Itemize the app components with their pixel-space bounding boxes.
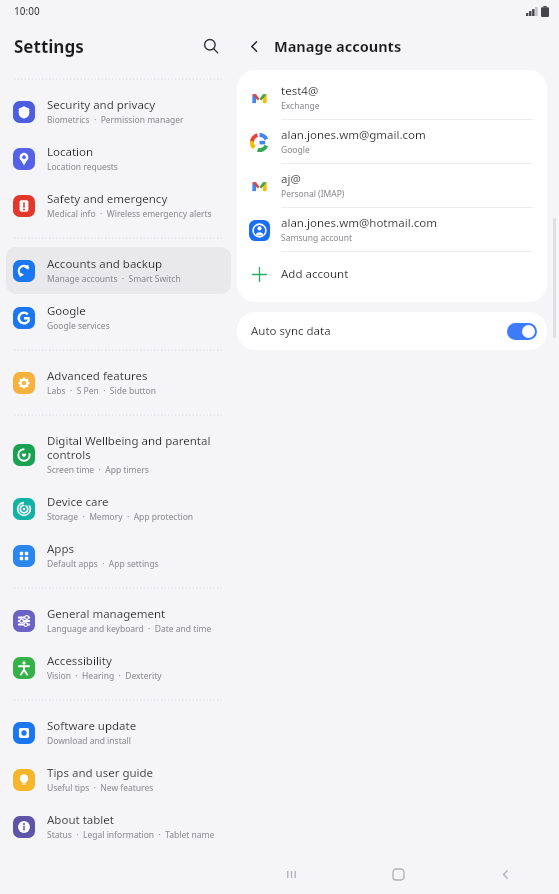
button[interactable]: Google [6, 294, 231, 341]
staticText: Software update [47, 718, 137, 734]
button[interactable]: Auto sync data toggle [507, 323, 537, 340]
staticText: Security and privacy [47, 97, 156, 113]
button[interactable]: test4@ [237, 76, 547, 119]
button[interactable]: Add account [237, 252, 547, 296]
staticText: Safety and emergency [47, 191, 168, 207]
staticText: Default apps · App settings [47, 558, 159, 570]
staticText: Device care [47, 494, 109, 510]
staticText: Download and install [47, 735, 131, 747]
button[interactable]: aj@ [237, 164, 547, 207]
button[interactable]: alan.jones.wm@gmail.com [237, 120, 547, 163]
staticText: Useful tips · New features [47, 782, 154, 794]
staticText: Vision · Hearing · Dexterity [47, 670, 162, 682]
staticText: About tablet [47, 812, 114, 828]
staticText: alan.jones.wm@hotmail.com [281, 215, 437, 231]
button[interactable]: Tips and user guide [6, 756, 231, 803]
button[interactable]: Accounts and backup [6, 247, 231, 294]
staticText: aj@ [281, 171, 301, 187]
staticText: Exchange [281, 100, 320, 112]
button[interactable]: Security and privacy [6, 88, 231, 135]
staticText: Accessibility [47, 653, 112, 669]
staticText: Storage · Memory · App protection [47, 511, 194, 523]
button[interactable]: Device care [6, 485, 231, 532]
staticText: Manage accounts · Smart Switch [47, 273, 181, 285]
staticText: Medical info · Wireless emergency alerts [47, 208, 212, 220]
staticText: Personal (IMAP) [281, 188, 345, 200]
staticText: Apps [47, 541, 75, 557]
button[interactable]: Back [452, 855, 559, 894]
button[interactable]: Back [237, 29, 271, 63]
staticText: Accounts and backup [47, 256, 163, 272]
button[interactable]: Search [193, 28, 229, 64]
staticText: Tips and user guide [47, 765, 154, 781]
staticText: test4@ [281, 83, 319, 99]
button[interactable]: alan.jones.wm@hotmail.com [237, 208, 547, 251]
staticText: alan.jones.wm@gmail.com [281, 127, 426, 143]
staticText: Location requests [47, 161, 118, 173]
staticText: Labs · S Pen · Side button [47, 385, 156, 397]
staticText: Biometrics · Permission manager [47, 114, 184, 126]
staticText: Google [47, 303, 86, 319]
button[interactable]: Auto sync data [237, 312, 547, 350]
button[interactable]: About tablet [6, 803, 231, 850]
staticText: Google [281, 144, 310, 156]
staticText: Location [47, 144, 94, 160]
staticText: Language and keyboard · Date and time [47, 623, 212, 635]
button[interactable]: Advanced features [6, 359, 231, 406]
button[interactable]: Apps [6, 532, 231, 579]
staticText: Screen time · App timers [47, 464, 149, 476]
button[interactable]: Software update [6, 709, 231, 756]
staticText: Settings [14, 35, 84, 58]
button[interactable]: Digital Wellbeing and parental controls [6, 424, 231, 485]
button[interactable]: Recent apps [237, 855, 345, 894]
staticText: Status · Legal information · Tablet name [47, 829, 215, 841]
staticText: 10:00 [14, 4, 40, 18]
staticText: Advanced features [47, 368, 148, 384]
staticText: Auto sync data [251, 323, 331, 339]
button[interactable]: Safety and emergency [6, 182, 231, 229]
staticText: Samsung account [281, 232, 353, 244]
button[interactable]: General management [6, 597, 231, 644]
staticText: General management [47, 606, 166, 622]
staticText: Manage accounts [274, 36, 402, 56]
staticText: Digital Wellbeing and parental controls [47, 433, 223, 463]
button[interactable]: Accessibility [6, 644, 231, 691]
staticText: Google services [47, 320, 110, 332]
button[interactable]: Location [6, 135, 231, 182]
button[interactable]: Home [345, 855, 452, 894]
staticText: Add account [281, 266, 349, 282]
